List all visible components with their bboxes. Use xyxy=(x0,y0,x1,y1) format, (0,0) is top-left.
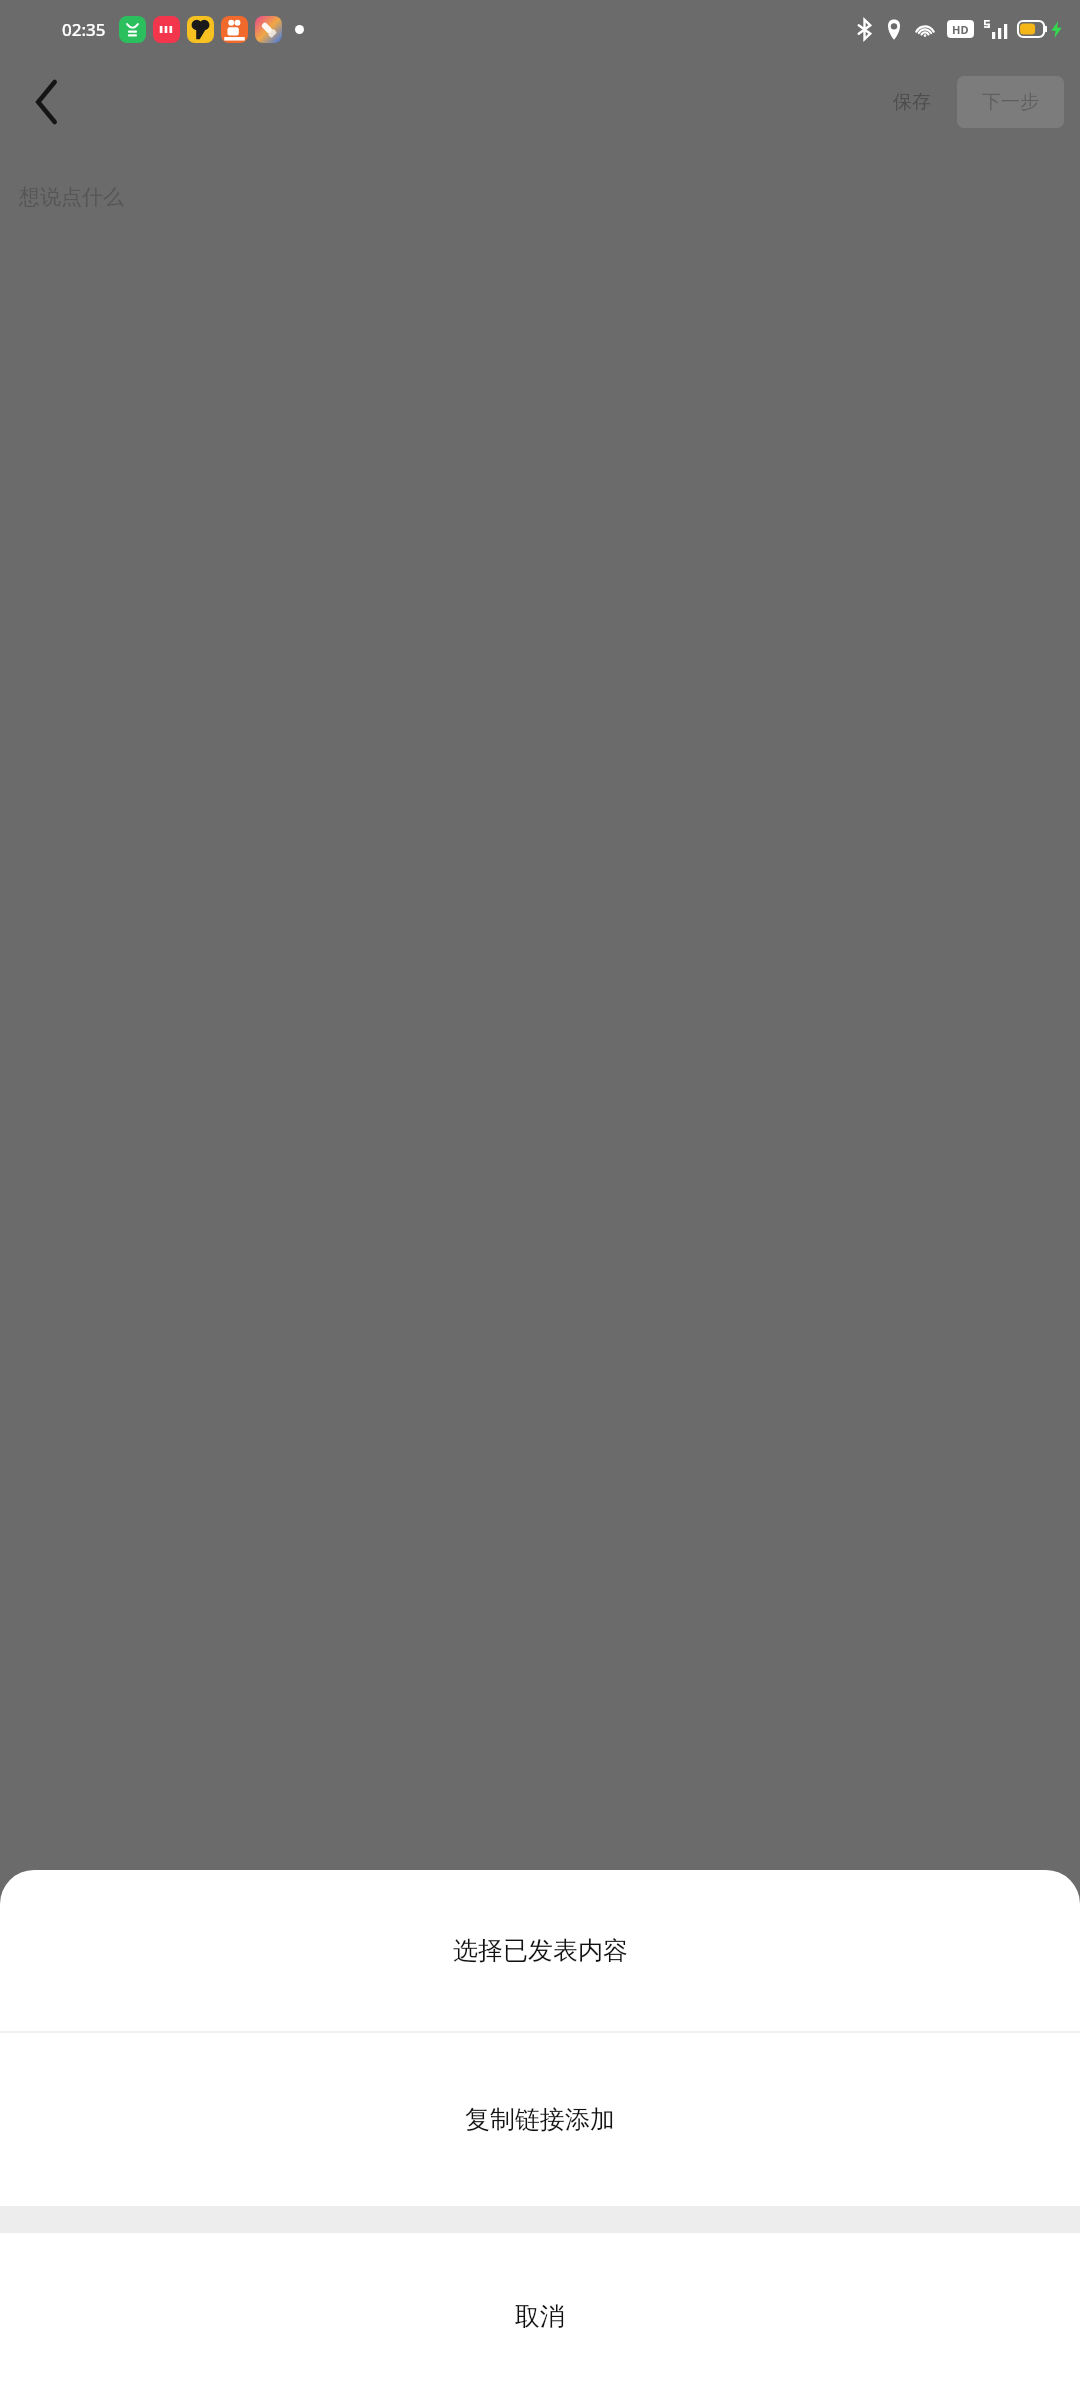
button[interactable]: 内容链接 xyxy=(134,2226,248,2376)
staticText: 下一步 xyxy=(982,90,1039,114)
button[interactable]: 下一步 xyxy=(957,76,1064,128)
staticText: 02:35 xyxy=(62,18,106,41)
button[interactable]: 音乐 xyxy=(367,2226,481,2376)
staticText: HD xyxy=(952,22,969,37)
button[interactable]: 选择已发表内容 xyxy=(0,1870,1080,2031)
staticText: 想说点什么 xyxy=(19,184,124,210)
staticText: 复制链接添加 xyxy=(465,2104,615,2135)
button[interactable]: 保存 xyxy=(877,78,947,126)
staticText: 取消 xyxy=(515,2301,565,2332)
staticText: 保存 xyxy=(893,90,931,114)
button[interactable]: 返回 xyxy=(14,69,80,135)
staticText: 选择已发表内容 xyxy=(453,1935,628,1966)
button[interactable]: 复制链接添加 xyxy=(0,2033,1080,2206)
button[interactable]: 视频号 xyxy=(832,2226,946,2376)
button[interactable]: 取消 xyxy=(0,2233,1080,2400)
button[interactable]: 账号名片 xyxy=(599,2226,713,2376)
